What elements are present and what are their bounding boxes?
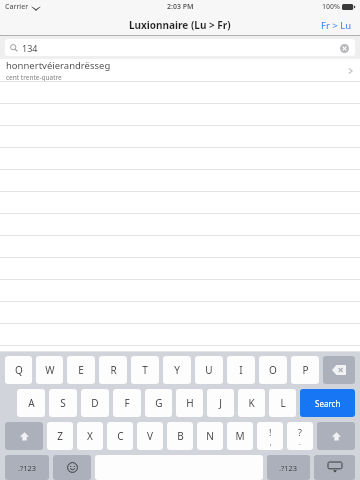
staticText: .?123 bbox=[279, 463, 298, 473]
button[interactable]: Z bbox=[47, 422, 73, 450]
button[interactable]: E bbox=[67, 356, 95, 384]
button[interactable]: Search bbox=[300, 389, 355, 417]
button[interactable]: Shift bbox=[317, 422, 355, 450]
staticText: J bbox=[219, 396, 222, 410]
staticText: M bbox=[235, 429, 245, 443]
staticText: , bbox=[270, 438, 272, 447]
button[interactable]: V bbox=[137, 422, 163, 450]
staticText: C bbox=[117, 429, 124, 443]
staticText: I bbox=[239, 363, 243, 377]
button[interactable]: M bbox=[227, 422, 253, 450]
button[interactable]: honnertvéierandrësseg bbox=[0, 59, 360, 82]
staticText: Luxionnaire (Lu > Fr) bbox=[129, 18, 231, 32]
staticText: L bbox=[280, 396, 286, 410]
button[interactable]: P bbox=[291, 356, 319, 384]
staticText: honnertvéierandrësseg bbox=[6, 59, 111, 72]
staticText: . bbox=[299, 438, 301, 447]
staticText: F bbox=[124, 396, 130, 410]
staticText: Carrier bbox=[5, 2, 29, 12]
staticText: B bbox=[177, 429, 184, 443]
staticText: T bbox=[142, 363, 148, 377]
button[interactable]: Y bbox=[163, 356, 191, 384]
staticText: Y bbox=[174, 363, 180, 377]
button[interactable]: Shift bbox=[5, 422, 43, 450]
button[interactable]: B bbox=[167, 422, 193, 450]
staticText: .?123 bbox=[18, 463, 37, 473]
staticText: U bbox=[205, 363, 213, 377]
button[interactable]: .?123 bbox=[5, 455, 49, 480]
button[interactable]: .?123 bbox=[267, 455, 310, 480]
button[interactable]: Emoji bbox=[53, 455, 91, 480]
button[interactable]: Backspace bbox=[323, 356, 355, 384]
button[interactable]: O bbox=[259, 356, 287, 384]
button[interactable]: 134 bbox=[5, 39, 355, 56]
button[interactable]: C bbox=[107, 422, 133, 450]
button[interactable]: U bbox=[195, 356, 223, 384]
button[interactable]: I bbox=[227, 356, 255, 384]
button[interactable]: F bbox=[113, 389, 141, 417]
staticText: E bbox=[78, 363, 84, 377]
staticText: S bbox=[60, 396, 66, 410]
staticText: Search bbox=[315, 398, 341, 409]
staticText: D bbox=[91, 396, 99, 410]
button[interactable]: T bbox=[131, 356, 159, 384]
staticText: cent trente-quatre bbox=[6, 73, 62, 82]
button[interactable]: ! bbox=[257, 422, 283, 450]
button[interactable]: S bbox=[49, 389, 77, 417]
button[interactable]: Fr > Lu bbox=[313, 16, 360, 35]
button[interactable]: Hide keyboard bbox=[314, 455, 355, 480]
staticText: X bbox=[87, 429, 93, 443]
button[interactable]: W bbox=[36, 356, 63, 384]
staticText: A bbox=[28, 396, 35, 410]
staticText: Fr > Lu bbox=[321, 19, 352, 32]
staticText: R bbox=[110, 363, 117, 377]
staticText: ? bbox=[298, 426, 302, 438]
button[interactable]: J bbox=[207, 389, 234, 417]
staticText: H bbox=[186, 396, 194, 410]
staticText: G bbox=[155, 396, 163, 410]
button[interactable]: L bbox=[269, 389, 296, 417]
button[interactable]: R bbox=[99, 356, 127, 384]
button[interactable]: X bbox=[77, 422, 103, 450]
button[interactable]: A bbox=[17, 389, 45, 417]
staticText: Q bbox=[15, 363, 23, 377]
staticText: O bbox=[269, 363, 277, 377]
staticText: ! bbox=[269, 426, 272, 438]
button[interactable]: H bbox=[176, 389, 203, 417]
staticText: P bbox=[302, 363, 309, 377]
button[interactable]: N bbox=[197, 422, 223, 450]
staticText: 2:03 PM bbox=[167, 2, 194, 12]
staticText: W bbox=[45, 363, 55, 377]
staticText: K bbox=[248, 396, 255, 410]
button[interactable]: K bbox=[238, 389, 265, 417]
button[interactable]: Clear search bbox=[338, 42, 350, 54]
button[interactable]: Q bbox=[5, 356, 32, 384]
button[interactable]: ? bbox=[287, 422, 313, 450]
staticText: 134 bbox=[22, 42, 38, 54]
button[interactable]: D bbox=[81, 389, 109, 417]
staticText: V bbox=[147, 429, 153, 443]
staticText: Z bbox=[57, 429, 63, 443]
button[interactable]: G bbox=[145, 389, 172, 417]
staticText: N bbox=[206, 429, 214, 443]
staticText: 100% bbox=[322, 2, 340, 12]
